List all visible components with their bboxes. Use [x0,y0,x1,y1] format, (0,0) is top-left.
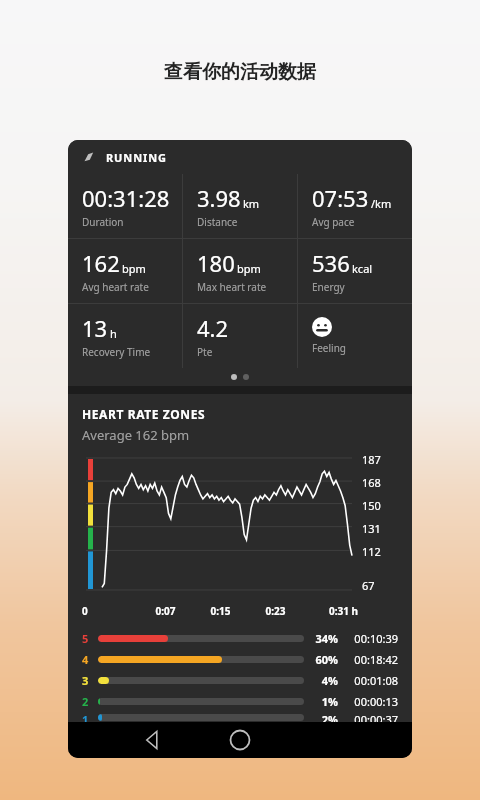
staticText: 4% [304,673,338,688]
staticText: 3.98 [197,183,241,213]
button[interactable]: Feeling [298,304,412,368]
button[interactable]: 162 [68,239,182,303]
staticText: 13 [82,313,108,343]
staticText: 0:31 h [303,604,358,618]
staticText: Avg heart rate [82,280,149,294]
staticText: 60% [304,652,338,667]
staticText: Max heart rate [197,280,267,294]
staticText: Feeling [312,341,346,355]
staticText: 2 [82,694,89,709]
staticText: Avg pace [312,215,355,229]
button[interactable]: 536 [298,239,412,303]
button[interactable]: 4.2 [183,304,297,368]
staticText: 3 [82,673,89,688]
staticText: 1 [82,712,89,722]
staticText: km [243,196,260,211]
staticText: bpm [237,261,261,276]
staticText: Energy [312,280,345,294]
staticText: 34% [304,631,338,646]
button[interactable]: 07:53 [298,174,412,238]
staticText: HEART RATE ZONES [82,406,206,422]
staticText: Distance [197,215,238,229]
staticText: 0:07 [138,604,193,618]
button[interactable]: 3.98 [183,174,297,238]
staticText: 0 [82,604,138,618]
staticText: 187 [362,452,381,467]
staticText: 00:01:08 [346,673,398,688]
staticText: 4 [82,652,89,667]
button[interactable]: 2 [82,691,398,712]
staticText: 07:53 [312,183,369,213]
button[interactable]: 13 [68,304,182,368]
button[interactable]: 1 [82,712,398,722]
staticText: 查看你的活动数据 [0,60,480,84]
staticText: h [110,326,117,341]
staticText: RUNNING [106,150,167,165]
other: Navigation bar [68,722,412,758]
button[interactable]: RUNNING [68,140,412,174]
staticText: kcal [352,261,373,276]
staticText: 162 [82,248,120,278]
staticText: 168 [362,475,381,490]
button[interactable]: 180 [183,239,297,303]
staticText: 112 [362,544,381,559]
staticText: bpm [122,261,146,276]
staticText: 00:00:37 [346,712,398,722]
staticText: 67 [362,578,375,593]
staticText: 536 [312,248,350,278]
staticText: 150 [362,498,381,513]
staticText: 00:18:42 [346,652,398,667]
other: Feeling [312,317,332,337]
staticText: 00:10:39 [346,631,398,646]
staticText: Recovery Time [82,345,151,359]
staticText: /km [371,196,392,211]
staticText: 2% [304,712,338,722]
button[interactable]: 4 [82,649,398,670]
button[interactable]: 3 [82,670,398,691]
staticText: 0:15 [193,604,248,618]
staticText: 00:31:28 [82,183,170,213]
staticText: 180 [197,248,235,278]
staticText: 0:23 [248,604,303,618]
staticText: 131 [362,521,381,536]
staticText: Average 162 bpm [82,426,190,444]
button[interactable]: 00:31:28 [68,174,182,238]
staticText: 1% [304,694,338,709]
staticText: Duration [82,215,124,229]
staticText: 00:00:13 [346,694,398,709]
button[interactable]: 5 [82,628,398,649]
staticText: Pte [197,345,213,359]
staticText: 4.2 [197,313,229,343]
staticText: 5 [82,631,89,646]
